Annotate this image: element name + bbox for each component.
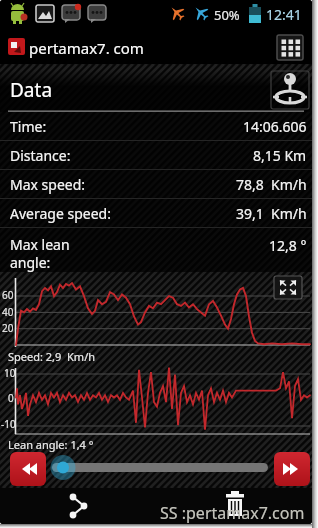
staticText: 20 bbox=[2, 321, 14, 335]
staticText: 50% bbox=[214, 6, 240, 24]
button[interactable] bbox=[10, 452, 46, 486]
staticText: pertamax7. com bbox=[29, 38, 144, 58]
staticText: Speed: 2,9 Km/h bbox=[8, 349, 96, 364]
button[interactable] bbox=[58, 490, 92, 522]
staticText: 60 bbox=[2, 288, 14, 302]
button[interactable] bbox=[220, 490, 254, 522]
staticText: 12:41 bbox=[266, 5, 302, 24]
staticText: Max lean angle: bbox=[10, 235, 70, 272]
button[interactable] bbox=[50, 455, 270, 481]
button[interactable]: Average speed: bbox=[0, 199, 312, 228]
button[interactable]: Max lean angle: bbox=[0, 228, 312, 272]
staticText: 78,8 Km/h bbox=[236, 175, 307, 194]
button[interactable] bbox=[271, 71, 309, 109]
staticText: 12,8 ° bbox=[269, 236, 307, 255]
staticText: 10 bbox=[4, 366, 16, 380]
staticText: 8,15 Km bbox=[253, 146, 307, 165]
staticText: Distance: bbox=[10, 146, 71, 165]
button[interactable] bbox=[274, 276, 302, 299]
staticText: 14:06.606 bbox=[243, 117, 307, 136]
staticText: 0 bbox=[8, 391, 14, 405]
staticText: Data bbox=[10, 77, 53, 103]
staticText: 39,1 Km/h bbox=[236, 204, 307, 223]
button[interactable]: Distance: bbox=[0, 141, 312, 170]
staticText: -10 bbox=[1, 417, 16, 431]
button[interactable]: Max speed: bbox=[0, 170, 312, 199]
staticText: Max speed: bbox=[10, 175, 86, 194]
staticText: Average speed: bbox=[10, 204, 111, 223]
button[interactable] bbox=[274, 452, 310, 486]
button[interactable]: Time: bbox=[0, 112, 312, 141]
staticText: Time: bbox=[10, 117, 47, 136]
staticText: 40 bbox=[2, 305, 14, 319]
button[interactable] bbox=[277, 35, 303, 60]
staticText: Lean angle: 1,4 ° bbox=[8, 437, 94, 452]
staticText: SS :pertamax7.com bbox=[160, 502, 305, 524]
